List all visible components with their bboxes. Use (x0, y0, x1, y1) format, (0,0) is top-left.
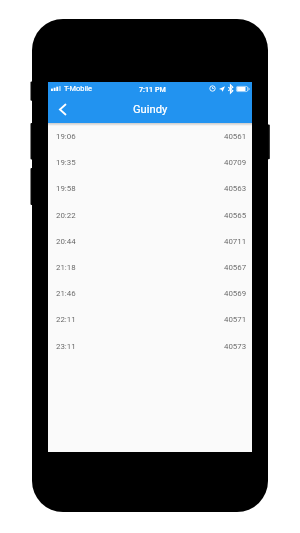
staticText: T-Mobile (64, 84, 92, 93)
staticText: 40561 (224, 132, 247, 141)
staticText: Guindy (133, 103, 168, 116)
button[interactable]: 20:44 (48, 228, 252, 254)
staticText: 19:06 (56, 132, 76, 141)
staticText: 40709 (224, 158, 247, 167)
staticText: 40571 (224, 315, 247, 324)
button[interactable]: 19:35 (48, 149, 252, 175)
staticText: 22:11 (56, 315, 76, 324)
button[interactable]: 19:06 (48, 123, 252, 149)
staticText: 40567 (224, 263, 247, 272)
staticText: 20:44 (56, 237, 76, 246)
staticText: 21:46 (56, 289, 76, 298)
staticText: 20:22 (56, 211, 76, 220)
staticText: 40563 (224, 184, 247, 193)
button[interactable]: Back (54, 98, 70, 120)
staticText: 21:18 (56, 263, 76, 272)
staticText: 40569 (224, 289, 247, 298)
staticText: 40711 (224, 237, 247, 246)
button[interactable]: 19:58 (48, 175, 252, 201)
staticText: 7:11 PM (139, 85, 166, 93)
staticText: 19:35 (56, 158, 76, 167)
button[interactable]: 22:11 (48, 306, 252, 332)
button[interactable]: 23:11 (48, 333, 252, 359)
staticText: 19:58 (56, 184, 76, 193)
button[interactable]: 20:22 (48, 202, 252, 228)
staticText: 40573 (224, 342, 247, 351)
staticText: 40565 (224, 211, 247, 220)
staticText: 23:11 (56, 342, 76, 351)
button[interactable]: 21:46 (48, 280, 252, 306)
button[interactable]: 21:18 (48, 254, 252, 280)
